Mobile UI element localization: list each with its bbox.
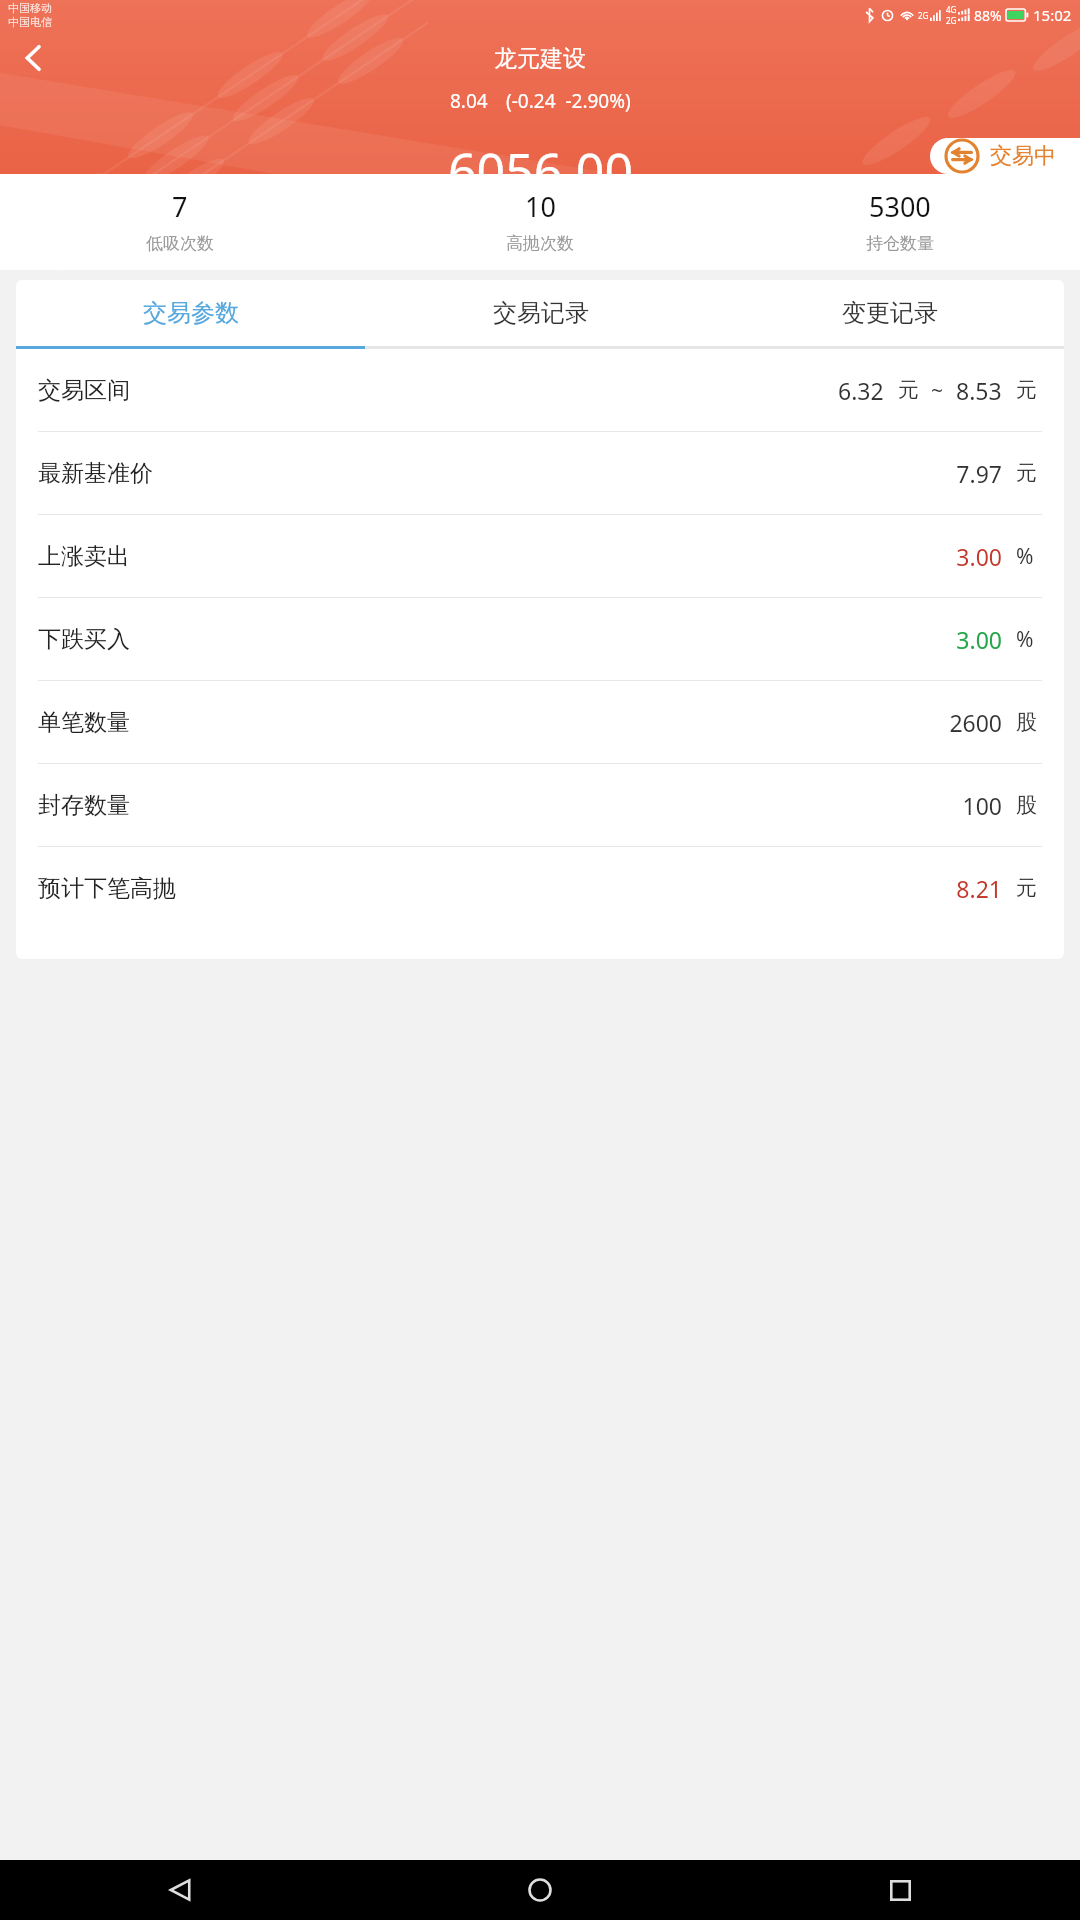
button[interactable]: 10 xyxy=(360,188,720,254)
staticText: 5300 xyxy=(869,188,931,225)
staticText: 元 xyxy=(1016,377,1037,403)
staticText: 下跌买入 xyxy=(38,625,130,654)
staticText: 4G xyxy=(946,4,957,15)
staticText: (-0.24 -2.90%) xyxy=(506,88,631,114)
staticText: 预计下笔高抛 xyxy=(38,874,176,903)
staticText: 100 xyxy=(962,790,1002,821)
staticText: 高抛次数 xyxy=(506,233,574,254)
staticText: 2G xyxy=(918,10,929,21)
button[interactable]: Recents xyxy=(720,1860,1080,1920)
staticText: 低吸次数 xyxy=(146,233,214,254)
staticText: 交易参数 xyxy=(143,298,239,328)
button[interactable]: 5300 xyxy=(720,188,1080,254)
staticText: 8.04 xyxy=(450,88,488,114)
staticText: 最新基准价 xyxy=(38,459,153,488)
button[interactable]: 单笔数量 xyxy=(16,681,1064,763)
button[interactable]: Back xyxy=(0,1860,360,1920)
staticText: 中国电信 xyxy=(8,15,52,29)
staticText: % xyxy=(1016,542,1034,571)
staticText: 2600 xyxy=(949,707,1002,738)
staticText: 10 xyxy=(525,188,556,225)
button[interactable]: 下跌买入 xyxy=(16,598,1064,680)
staticText: 股 xyxy=(1016,792,1037,818)
staticText: % xyxy=(1016,625,1034,654)
staticText: 6056.00 xyxy=(448,136,633,174)
button[interactable]: 交易参数 xyxy=(16,280,366,346)
staticText: 3.00 xyxy=(956,624,1002,655)
button[interactable]: 封存数量 xyxy=(16,764,1064,846)
staticText: 中国移动 xyxy=(8,1,52,15)
button[interactable]: 最新基准价 xyxy=(16,432,1064,514)
button[interactable]: 预计下笔高抛 xyxy=(16,847,1064,929)
staticText: 3.00 xyxy=(956,541,1002,572)
staticText: 股 xyxy=(1016,709,1037,735)
staticText: 2G xyxy=(946,15,957,26)
staticText: 持仓数量 xyxy=(866,233,934,254)
button[interactable]: 7 xyxy=(0,188,360,254)
staticText: 15:02 xyxy=(1033,5,1072,25)
staticText: 元 xyxy=(898,377,919,403)
staticText: 8.21 xyxy=(956,873,1002,904)
staticText: 7.97 xyxy=(956,458,1002,489)
staticText: 8.53 xyxy=(956,375,1002,406)
staticText: 封存数量 xyxy=(38,791,130,820)
staticText: 变更记录 xyxy=(842,298,938,328)
staticText: 单笔数量 xyxy=(38,708,130,737)
button[interactable]: 交易区间 xyxy=(16,349,1064,431)
staticText: ~ xyxy=(931,376,944,405)
button[interactable]: 变更记录 xyxy=(715,280,1064,346)
staticText: 6.32 xyxy=(838,375,884,406)
button[interactable]: 交易记录 xyxy=(366,280,715,346)
staticText: 交易记录 xyxy=(493,298,589,328)
staticText: 元 xyxy=(1016,875,1037,901)
staticText: 交易区间 xyxy=(38,376,130,405)
staticText: 龙元建设 xyxy=(494,44,586,73)
staticText: 88% xyxy=(974,6,1002,25)
button[interactable]: 交易中 xyxy=(930,138,1080,174)
staticText: 元 xyxy=(1016,460,1037,486)
button[interactable]: Home xyxy=(360,1860,720,1920)
button[interactable]: Back xyxy=(6,30,62,86)
button[interactable]: 上涨卖出 xyxy=(16,515,1064,597)
staticText: 7 xyxy=(172,188,188,225)
staticText: 上涨卖出 xyxy=(38,542,130,571)
staticText: 交易中 xyxy=(990,142,1056,170)
